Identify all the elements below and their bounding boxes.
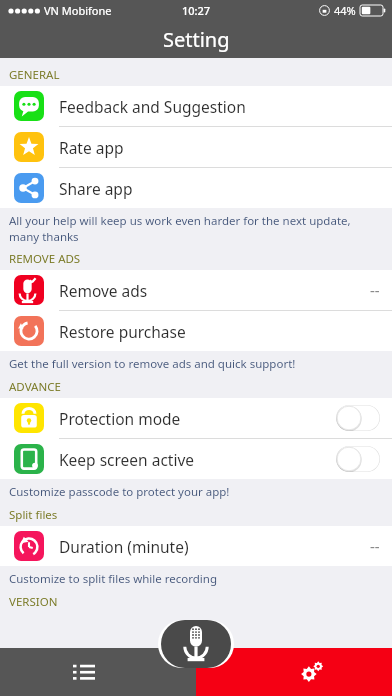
button[interactable]: Protection mode <box>0 398 392 439</box>
button[interactable] <box>336 405 380 431</box>
button[interactable]: Keep screen active <box>0 439 392 479</box>
staticText: All your help will keep us work even har… <box>9 213 374 244</box>
staticText: Customize passcode to protect your app! <box>9 484 230 500</box>
staticText: -- <box>370 280 380 300</box>
staticText: Share app <box>59 178 380 199</box>
staticText: Restore purchase <box>59 321 380 342</box>
button[interactable]: Remove ads <box>0 270 392 311</box>
staticText: Setting <box>163 26 230 53</box>
staticText: Protection mode <box>59 408 336 429</box>
button[interactable]: Rate app <box>0 127 392 168</box>
staticText: VN Mobifone <box>44 3 112 18</box>
staticText: GENERAL <box>9 67 60 83</box>
button[interactable]: Restore purchase <box>0 311 392 351</box>
staticText: Keep screen active <box>59 449 336 470</box>
button[interactable]: Recordings list <box>0 648 196 696</box>
button[interactable]: Record <box>161 620 231 668</box>
staticText: VERSION <box>9 594 58 610</box>
button[interactable]: Duration (minute) <box>0 526 392 566</box>
staticText: Duration (minute) <box>59 536 370 557</box>
staticText: Customize to split files while recording <box>9 571 217 587</box>
staticText: ADVANCE <box>9 379 61 395</box>
staticText: Remove ads <box>59 280 370 301</box>
staticText: Split files <box>9 507 58 523</box>
staticText: Feedback and Suggestion <box>59 96 380 117</box>
staticText: -- <box>370 536 380 556</box>
button[interactable]: Settings <box>196 648 392 696</box>
button[interactable] <box>336 446 380 472</box>
staticText: Get the full version to remove ads and q… <box>9 356 296 372</box>
staticText: REMOVE ADS <box>9 251 81 267</box>
staticText: Rate app <box>59 137 380 158</box>
button[interactable]: Feedback and Suggestion <box>0 86 392 127</box>
staticText: 10:27 <box>182 3 211 18</box>
button[interactable]: Share app <box>0 168 392 208</box>
staticText: 44% <box>334 3 356 18</box>
